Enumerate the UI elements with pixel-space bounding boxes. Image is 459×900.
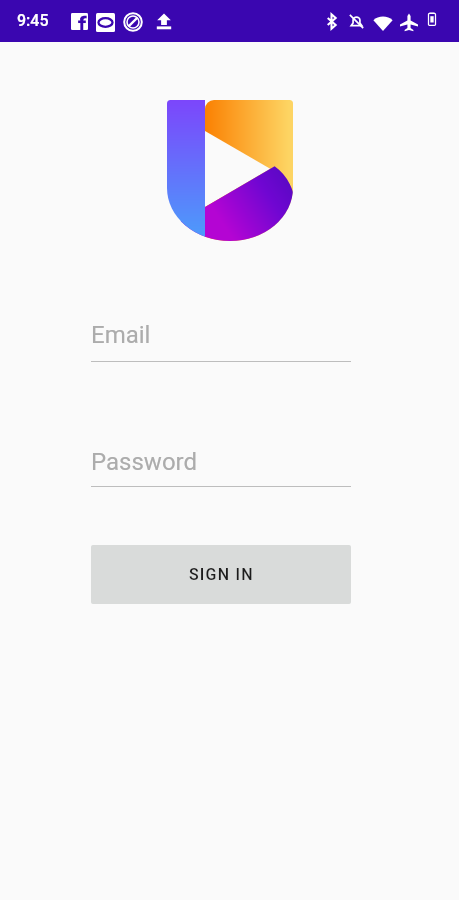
- staticText: Password: [91, 448, 198, 476]
- button[interactable]: Email: [91, 318, 351, 362]
- staticText: SIGN IN: [189, 565, 254, 584]
- button[interactable]: Password: [91, 443, 351, 487]
- button[interactable]: SIGN IN: [91, 545, 351, 604]
- staticText: 9:45: [17, 11, 49, 30]
- staticText: Email: [91, 321, 151, 349]
